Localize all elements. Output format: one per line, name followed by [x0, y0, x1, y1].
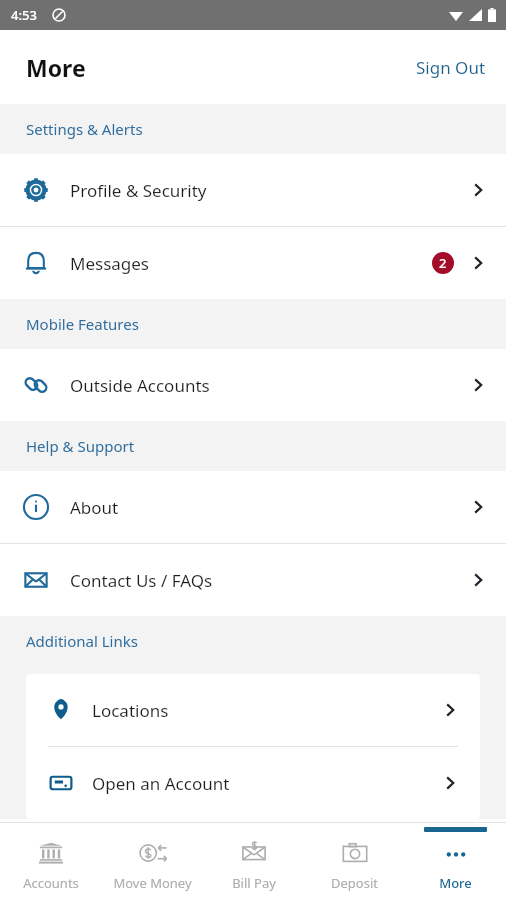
staticText: Sign Out	[416, 56, 486, 79]
staticText: 4:53	[11, 6, 37, 24]
staticText: Messages	[70, 252, 150, 275]
other: About	[22, 493, 50, 521]
other: Contact Us / FAQs	[22, 566, 50, 594]
other: Messages	[22, 249, 50, 277]
button[interactable]: Bill Pay	[203, 823, 304, 900]
button[interactable]: Outside Accounts	[0, 349, 506, 421]
other: Accounts	[36, 838, 66, 868]
staticText: Help & Support	[26, 436, 135, 456]
other: Deposit	[340, 838, 370, 868]
staticText: Additional Links	[26, 631, 138, 651]
button[interactable]: Contact Us / FAQs	[0, 544, 506, 616]
staticText: Settings & Alerts	[26, 119, 143, 139]
staticText: Open an Account	[92, 772, 230, 795]
button[interactable]: Move Money	[102, 823, 203, 900]
button[interactable]: More	[405, 823, 506, 900]
other: Locations	[48, 697, 74, 723]
button[interactable]: Profile & Security	[0, 154, 506, 226]
staticText: Bill Pay	[232, 874, 276, 892]
button[interactable]: About	[0, 471, 506, 543]
staticText: More	[26, 52, 86, 83]
staticText: Accounts	[23, 874, 79, 892]
staticText: 2	[439, 254, 447, 272]
staticText: Outside Accounts	[70, 374, 210, 397]
staticText: Locations	[92, 699, 169, 722]
button[interactable]: Sign Out	[396, 46, 506, 89]
staticText: Mobile Features	[26, 314, 139, 334]
button[interactable]: Locations	[26, 674, 480, 746]
other: More	[441, 838, 471, 868]
other: Open an Account	[48, 770, 74, 796]
other: Bill Pay	[239, 838, 269, 868]
other: Profile & Security	[22, 176, 50, 204]
button[interactable]: Deposit	[304, 823, 405, 900]
staticText: About	[70, 496, 119, 519]
button[interactable]: Messages	[0, 227, 506, 299]
staticText: Contact Us / FAQs	[70, 569, 213, 592]
button[interactable]: Open an Account	[26, 747, 480, 819]
other: Move Money	[138, 838, 168, 868]
staticText: Move Money	[113, 874, 192, 892]
staticText: More	[439, 874, 472, 892]
staticText: Deposit	[331, 874, 378, 892]
other: Outside Accounts	[22, 371, 50, 399]
staticText: Profile & Security	[70, 179, 207, 202]
button[interactable]: Accounts	[0, 823, 102, 900]
